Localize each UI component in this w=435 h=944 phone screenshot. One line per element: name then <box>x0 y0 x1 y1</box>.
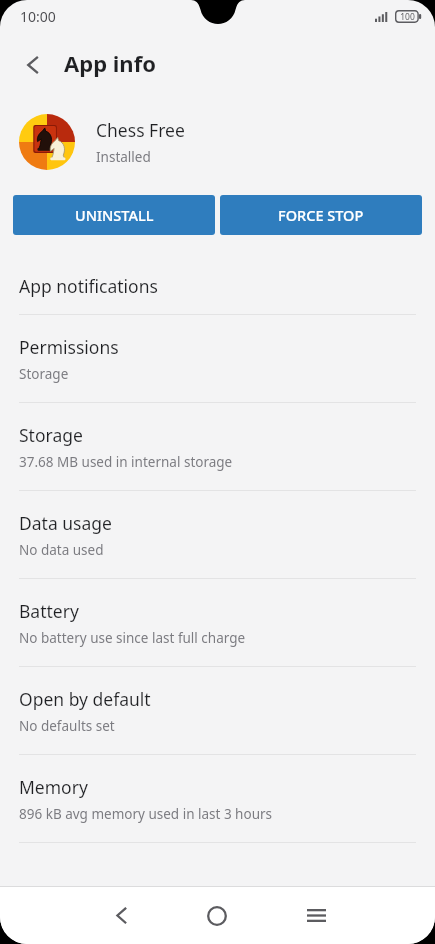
staticText: Data usage <box>19 511 112 535</box>
staticText: Storage <box>19 365 69 383</box>
staticText: UNINSTALL <box>75 205 154 225</box>
staticText: 896 kB avg memory used in last 3 hours <box>19 805 273 823</box>
button[interactable]: Memory <box>0 755 435 842</box>
staticText: No data used <box>19 541 104 559</box>
button[interactable]: Back <box>9 41 56 88</box>
staticText: No battery use since last full charge <box>19 629 246 647</box>
button[interactable]: Permissions <box>0 315 435 402</box>
staticText: 100 <box>400 11 415 23</box>
staticText: Installed <box>96 148 151 166</box>
button[interactable]: Battery <box>0 579 435 666</box>
button[interactable]: Recent apps <box>283 887 349 944</box>
staticText: App notifications <box>19 274 158 298</box>
staticText: 10:00 <box>20 7 56 26</box>
button[interactable]: Storage <box>0 403 435 490</box>
staticText: Memory <box>19 775 88 799</box>
button[interactable]: Open by default <box>0 667 435 754</box>
button[interactable]: Data usage <box>0 491 435 578</box>
staticText: Chess Free <box>96 118 185 142</box>
staticText: Storage <box>19 423 83 447</box>
button[interactable]: Back <box>88 887 154 944</box>
button[interactable]: App notifications <box>0 257 435 314</box>
button[interactable]: FORCE STOP <box>220 195 422 235</box>
staticText: Permissions <box>19 335 119 359</box>
staticText: FORCE STOP <box>278 205 364 225</box>
staticText: Battery <box>19 599 79 623</box>
button[interactable]: Home <box>184 887 250 944</box>
staticText: 37.68 MB used in internal storage <box>19 453 233 471</box>
staticText: Open by default <box>19 687 151 711</box>
staticText: App info <box>64 48 156 78</box>
button[interactable]: UNINSTALL <box>13 195 215 235</box>
staticText: No defaults set <box>19 717 115 735</box>
